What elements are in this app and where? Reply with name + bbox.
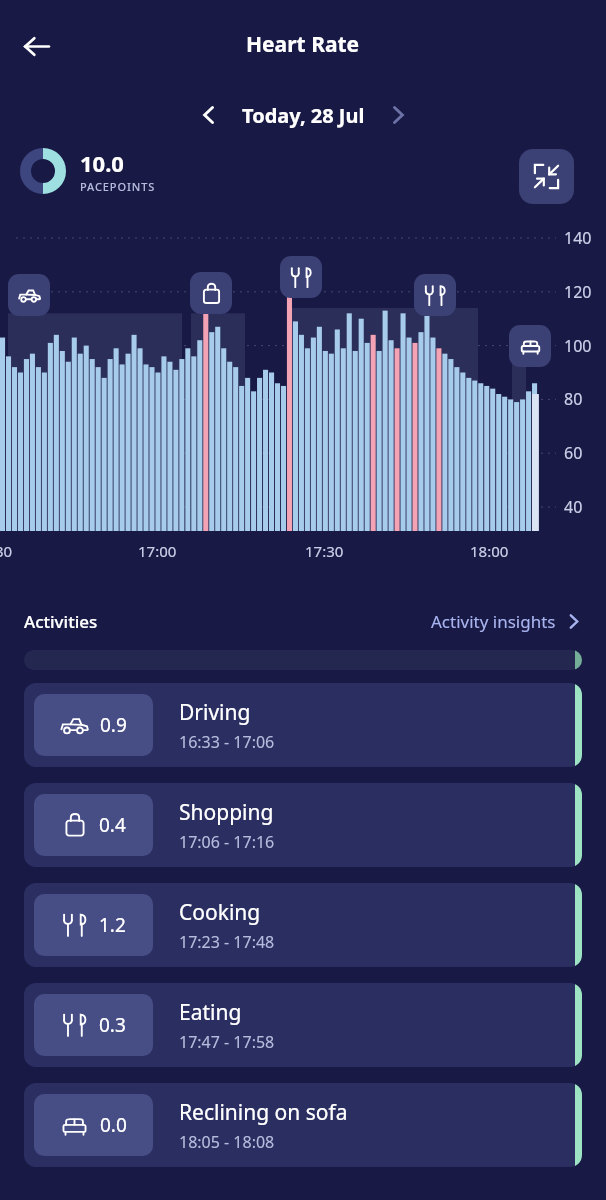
button[interactable]: 0.4: [24, 783, 582, 867]
staticText: 60: [564, 442, 583, 464]
staticText: 80: [564, 388, 583, 410]
button[interactable]: Eating marker: [414, 274, 456, 316]
button[interactable]: Back: [10, 20, 62, 72]
button[interactable]: Previous day: [188, 94, 230, 136]
staticText: 17:06 - 17:16: [179, 831, 275, 853]
button[interactable]: 10.0: [20, 148, 156, 194]
staticText: Today, 28 Jul: [242, 102, 365, 129]
button[interactable]: Collapse chart: [519, 149, 574, 204]
staticText: Activity insights: [431, 610, 556, 633]
staticText: 18:00: [470, 541, 509, 561]
staticText: Cooking: [179, 898, 261, 927]
button[interactable]: 1.2: [24, 883, 582, 967]
staticText: 0.0: [100, 1112, 127, 1138]
staticText: 0.9: [100, 712, 127, 738]
staticText: Activities: [24, 610, 98, 633]
staticText: Reclining on sofa: [179, 1098, 348, 1127]
staticText: 16:33 - 17:06: [179, 731, 275, 753]
staticText: 0.4: [99, 812, 126, 838]
staticText: Shopping: [179, 798, 274, 827]
button[interactable]: Shopping marker: [190, 272, 232, 314]
staticText: 120: [564, 281, 592, 303]
staticText: 10.0: [80, 148, 124, 178]
staticText: 40: [564, 496, 583, 518]
staticText: 30: [0, 541, 13, 561]
staticText: Heart Rate: [246, 30, 360, 59]
staticText: Driving: [179, 698, 251, 727]
button[interactable]: Today, 28 Jul: [242, 102, 365, 129]
button[interactable]: Reclining marker: [509, 325, 551, 367]
button[interactable]: 0.3: [24, 983, 582, 1067]
staticText: 140: [564, 227, 592, 249]
button[interactable]: Driving marker: [8, 274, 50, 316]
staticText: 17:00: [138, 541, 177, 561]
button[interactable]: 0.9: [24, 683, 582, 767]
button[interactable]: 0.0: [24, 1083, 582, 1167]
button[interactable]: Activity insights: [431, 610, 582, 633]
staticText: 17:23 - 17:48: [179, 931, 275, 953]
staticText: PACEPOINTS: [80, 179, 156, 194]
staticText: 18:05 - 18:08: [179, 1131, 275, 1153]
staticText: Eating: [179, 998, 242, 1027]
staticText: 17:30: [305, 541, 344, 561]
staticText: 17:47 - 17:58: [179, 1031, 275, 1053]
staticText: 1.2: [99, 912, 126, 938]
button[interactable]: [24, 650, 582, 670]
button[interactable]: Next day: [377, 94, 419, 136]
button[interactable]: Cooking marker: [280, 256, 322, 298]
staticText: 0.3: [99, 1012, 126, 1038]
staticText: 100: [564, 335, 592, 357]
